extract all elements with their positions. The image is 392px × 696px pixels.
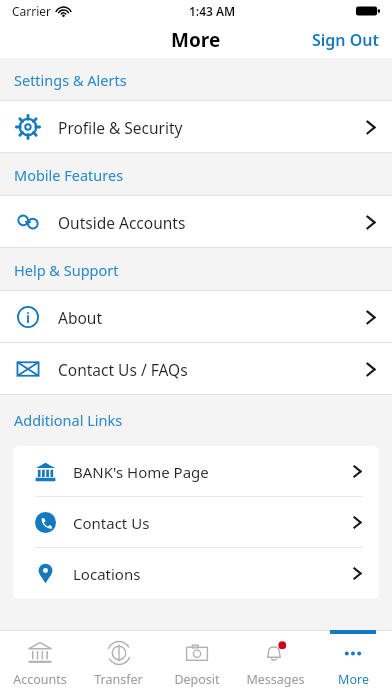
- staticText: Profile & Security: [58, 117, 183, 138]
- button[interactable]: Contact Us: [13, 497, 379, 548]
- button[interactable]: Sign Out: [300, 23, 392, 57]
- button[interactable]: Locations: [13, 548, 379, 599]
- staticText: Contact Us / FAQs: [58, 359, 188, 380]
- staticText: Additional Links: [14, 410, 123, 430]
- staticText: Help & Support: [14, 260, 119, 280]
- staticText: 1:43 AM: [189, 3, 236, 19]
- staticText: Transfer: [94, 671, 143, 688]
- button[interactable]: Accounts: [0, 630, 79, 696]
- staticText: About: [58, 307, 102, 328]
- staticText: Sign Out: [312, 29, 380, 51]
- staticText: Messages: [246, 671, 305, 688]
- button[interactable]: Profile & Security: [0, 101, 392, 153]
- staticText: More: [171, 27, 221, 53]
- staticText: Deposit: [174, 671, 220, 688]
- button[interactable]: Deposit: [158, 630, 236, 696]
- staticText: Accounts: [13, 671, 67, 688]
- staticText: Settings & Alerts: [14, 70, 127, 90]
- button[interactable]: About: [0, 291, 392, 343]
- staticText: BANK's Home Page: [73, 462, 209, 482]
- button[interactable]: Contact Us / FAQs: [0, 343, 392, 395]
- staticText: Carrier: [12, 3, 52, 19]
- staticText: Mobile Features: [14, 165, 124, 185]
- button[interactable]: BANK's Home Page: [13, 446, 379, 497]
- button[interactable]: Messages: [236, 630, 314, 696]
- button[interactable]: Transfer: [79, 630, 158, 696]
- staticText: Outside Accounts: [58, 212, 186, 233]
- staticText: More: [338, 671, 369, 688]
- staticText: Contact Us: [73, 513, 150, 533]
- button[interactable]: More: [314, 630, 392, 696]
- button[interactable]: Outside Accounts: [0, 196, 392, 248]
- staticText: Locations: [73, 564, 141, 584]
